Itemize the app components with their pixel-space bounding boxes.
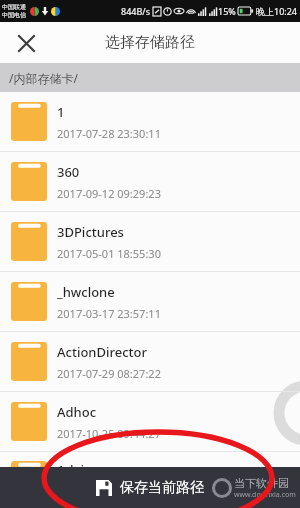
button[interactable]: 关闭 bbox=[10, 27, 42, 59]
button[interactable]: 保存当前路径 bbox=[86, 475, 214, 501]
staticText: ActionDirector bbox=[57, 343, 147, 361]
staticText: 2017-08-11 10:02:15 bbox=[57, 484, 161, 499]
button[interactable]: /内部存储卡/ bbox=[0, 63, 300, 92]
staticText: 中国电信 bbox=[2, 11, 26, 19]
staticText: 1 bbox=[57, 103, 65, 121]
staticText: 2017-03-17 23:57:11 bbox=[57, 306, 161, 321]
staticText: 2017-09-12 09:29:23 bbox=[57, 186, 161, 201]
staticText: 844B/s bbox=[121, 5, 150, 17]
staticText: www.downxia.com bbox=[234, 490, 296, 500]
staticText: 360 bbox=[57, 163, 80, 181]
staticText: 晚上10:24 bbox=[256, 5, 298, 17]
button[interactable]: 360 bbox=[0, 152, 300, 212]
staticText: _hwclone bbox=[57, 283, 115, 301]
button[interactable]: 1 bbox=[0, 92, 300, 152]
staticText: 2017-05-01 18:55:30 bbox=[57, 246, 161, 261]
staticText: Adview bbox=[57, 461, 102, 479]
staticText: 选择存储路径 bbox=[105, 33, 195, 52]
button[interactable]: 3DPictures bbox=[0, 212, 300, 272]
staticText: 2017-10-25 09:44:27 bbox=[57, 426, 161, 441]
button[interactable]: Adview bbox=[0, 452, 300, 508]
staticText: 15% bbox=[218, 5, 236, 17]
staticText: 2017-07-29 08:27:22 bbox=[57, 366, 161, 381]
staticText: 当下软件园 bbox=[234, 476, 289, 490]
staticText: 3DPictures bbox=[57, 223, 124, 241]
staticText: 保存当前路径 bbox=[120, 479, 204, 497]
staticText: 2017-07-28 23:30:11 bbox=[57, 126, 161, 141]
button[interactable]: _hwclone bbox=[0, 272, 300, 332]
staticText: /内部存储卡/ bbox=[9, 70, 78, 86]
staticText: 中国联通 bbox=[2, 3, 26, 11]
button[interactable]: ActionDirector bbox=[0, 332, 300, 392]
button[interactable]: Adhoc bbox=[0, 392, 300, 452]
staticText: Adhoc bbox=[57, 403, 97, 421]
